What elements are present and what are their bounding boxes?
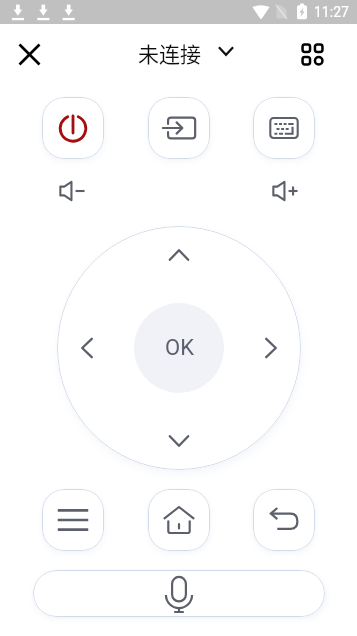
button[interactable]: Back <box>253 489 315 551</box>
button[interactable]: Down <box>139 400 219 470</box>
button[interactable]: Right <box>231 308 301 388</box>
button[interactable]: 未连接 <box>138 38 237 68</box>
staticText: 未连接 <box>138 38 201 68</box>
button[interactable]: Apps <box>294 36 330 72</box>
staticText: 11:27 <box>314 4 349 20</box>
button[interactable]: Home <box>148 489 210 551</box>
button[interactable]: Keyboard <box>253 97 315 159</box>
button[interactable]: Menu <box>42 489 104 551</box>
button[interactable]: Power <box>42 97 104 159</box>
button[interactable]: Up <box>139 226 219 296</box>
button[interactable]: Close <box>11 36 47 72</box>
button[interactable]: Input source <box>148 97 210 159</box>
button[interactable]: Volume down <box>54 173 90 209</box>
button[interactable]: Volume up <box>267 173 303 209</box>
button[interactable]: Left <box>57 308 127 388</box>
button[interactable]: Voice search <box>33 570 325 617</box>
button[interactable]: OK <box>134 303 224 393</box>
staticText: OK <box>165 335 194 361</box>
